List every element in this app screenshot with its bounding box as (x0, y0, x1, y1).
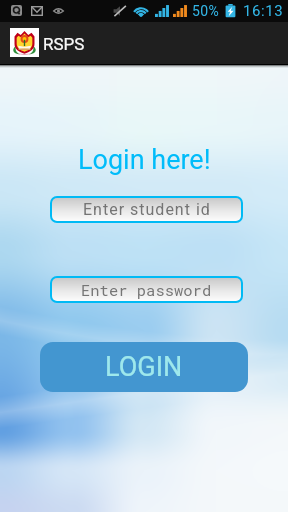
staticText: 16:13 (243, 2, 284, 20)
staticText: LOGIN (105, 351, 183, 383)
staticText: Enter student id (83, 200, 211, 219)
staticText: RSPS (43, 34, 85, 54)
button[interactable]: Enter password (52, 278, 241, 301)
button[interactable]: Enter student id (52, 198, 241, 221)
staticText: Login here! (78, 144, 211, 176)
other: App logo (10, 28, 39, 57)
button[interactable]: LOGIN (40, 342, 248, 392)
staticText: 50% (192, 3, 220, 19)
staticText: Enter password (81, 280, 212, 300)
